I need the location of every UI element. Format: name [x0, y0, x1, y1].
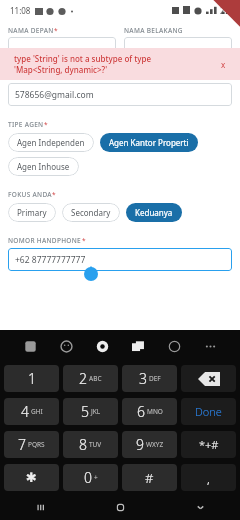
- staticText: ABC: [89, 374, 102, 383]
- staticText: #: [145, 469, 154, 487]
- staticText: *: [54, 26, 58, 35]
- staticText: 6: [137, 402, 145, 421]
- button[interactable]: Settings: [84, 330, 120, 362]
- staticText: MNO: [147, 407, 163, 416]
- button[interactable]: 2: [63, 365, 118, 392]
- staticText: +62 87777777777: [15, 254, 86, 266]
- staticText: 5: [81, 402, 89, 421]
- button[interactable]: Agen Inhouse: [8, 157, 79, 176]
- staticText: *: [44, 120, 48, 129]
- staticText: Agen Independen: [17, 137, 85, 148]
- button[interactable]: Agen Independen: [8, 133, 94, 152]
- staticText: 27: [220, 5, 230, 16]
- button[interactable]: Dismiss error: [216, 57, 230, 71]
- button[interactable]: 6: [122, 398, 177, 425]
- button[interactable]: Emoji: [48, 330, 84, 362]
- staticText: Secondary: [71, 207, 111, 218]
- staticText: *+#: [199, 437, 219, 452]
- button[interactable]: Delete: [181, 365, 236, 392]
- staticText: ALAMAT EMAIL: [8, 72, 59, 81]
- staticText: ✱: [26, 470, 37, 485]
- button[interactable]: 1: [4, 365, 59, 392]
- button[interactable]: *+#: [181, 431, 236, 458]
- button[interactable]: 5: [63, 398, 118, 425]
- button[interactable]: Done: [181, 398, 236, 425]
- staticText: Agen Inhouse: [17, 161, 70, 172]
- staticText: 8: [79, 435, 87, 454]
- button[interactable]: 4: [4, 398, 59, 425]
- staticText: NAMA BELAKANG: [124, 26, 183, 35]
- staticText: JKL: [91, 407, 101, 416]
- staticText: GHI: [31, 407, 43, 416]
- staticText: ,: [207, 470, 210, 486]
- button[interactable]: ,: [181, 464, 236, 491]
- button[interactable]: Clipboard: [120, 330, 156, 362]
- button[interactable]: Home: [80, 494, 160, 520]
- staticText: 578656@gmail.com: [15, 89, 94, 101]
- button[interactable]: 9: [122, 431, 177, 458]
- staticText: PQRS: [28, 440, 45, 449]
- staticText: WXYZ: [146, 440, 164, 449]
- staticText: *: [59, 72, 63, 81]
- button[interactable]: Resize: [156, 330, 192, 362]
- button[interactable]: Primary: [8, 203, 56, 222]
- staticText: NOMOR HANDPHONE: [8, 236, 82, 245]
- staticText: DEF: [149, 374, 161, 383]
- staticText: Done: [195, 404, 222, 419]
- staticText: *: [52, 190, 56, 199]
- staticText: 4: [21, 402, 29, 421]
- staticText: TIPE AGEN: [8, 120, 44, 129]
- staticText: Keduanya: [135, 207, 173, 218]
- button[interactable]: [8, 37, 116, 60]
- button[interactable]: [124, 37, 232, 60]
- button[interactable]: Secondary: [62, 203, 120, 222]
- button[interactable]: +62 87777777777: [8, 248, 232, 271]
- staticText: 9: [136, 435, 144, 454]
- staticText: 'Map<String, dynamic>?': [14, 64, 108, 75]
- staticText: NAMA DEPAN: [8, 26, 54, 35]
- button[interactable]: More: [192, 330, 228, 362]
- staticText: Agen Kantor Properti: [109, 137, 189, 148]
- button[interactable]: 578656@gmail.com: [8, 83, 232, 106]
- staticText: +: [94, 473, 98, 482]
- staticText: 2: [79, 369, 87, 388]
- button[interactable]: Agen Kantor Properti: [100, 133, 198, 152]
- button[interactable]: #: [122, 464, 177, 491]
- button[interactable]: Stickers: [12, 330, 48, 362]
- button[interactable]: 8: [63, 431, 118, 458]
- button[interactable]: 7: [4, 431, 59, 458]
- button[interactable]: Keduanya: [126, 203, 182, 222]
- staticText: TUV: [89, 440, 102, 449]
- staticText: type 'String' is not a subtype of type: [14, 53, 152, 64]
- staticText: Primary: [17, 207, 47, 218]
- staticText: *: [82, 236, 86, 245]
- staticText: 7: [18, 435, 26, 454]
- button[interactable]: Recents: [0, 494, 80, 520]
- staticText: x: [221, 59, 226, 70]
- button[interactable]: ✱: [4, 464, 59, 491]
- button[interactable]: 0: [63, 464, 118, 491]
- button[interactable]: 3: [122, 365, 177, 392]
- staticText: FOKUS ANDA: [8, 190, 52, 199]
- staticText: 11:08: [10, 5, 31, 16]
- staticText: 0: [84, 468, 92, 487]
- staticText: 3: [139, 369, 147, 388]
- staticText: 1: [28, 369, 36, 388]
- button[interactable]: Back: [160, 494, 240, 520]
